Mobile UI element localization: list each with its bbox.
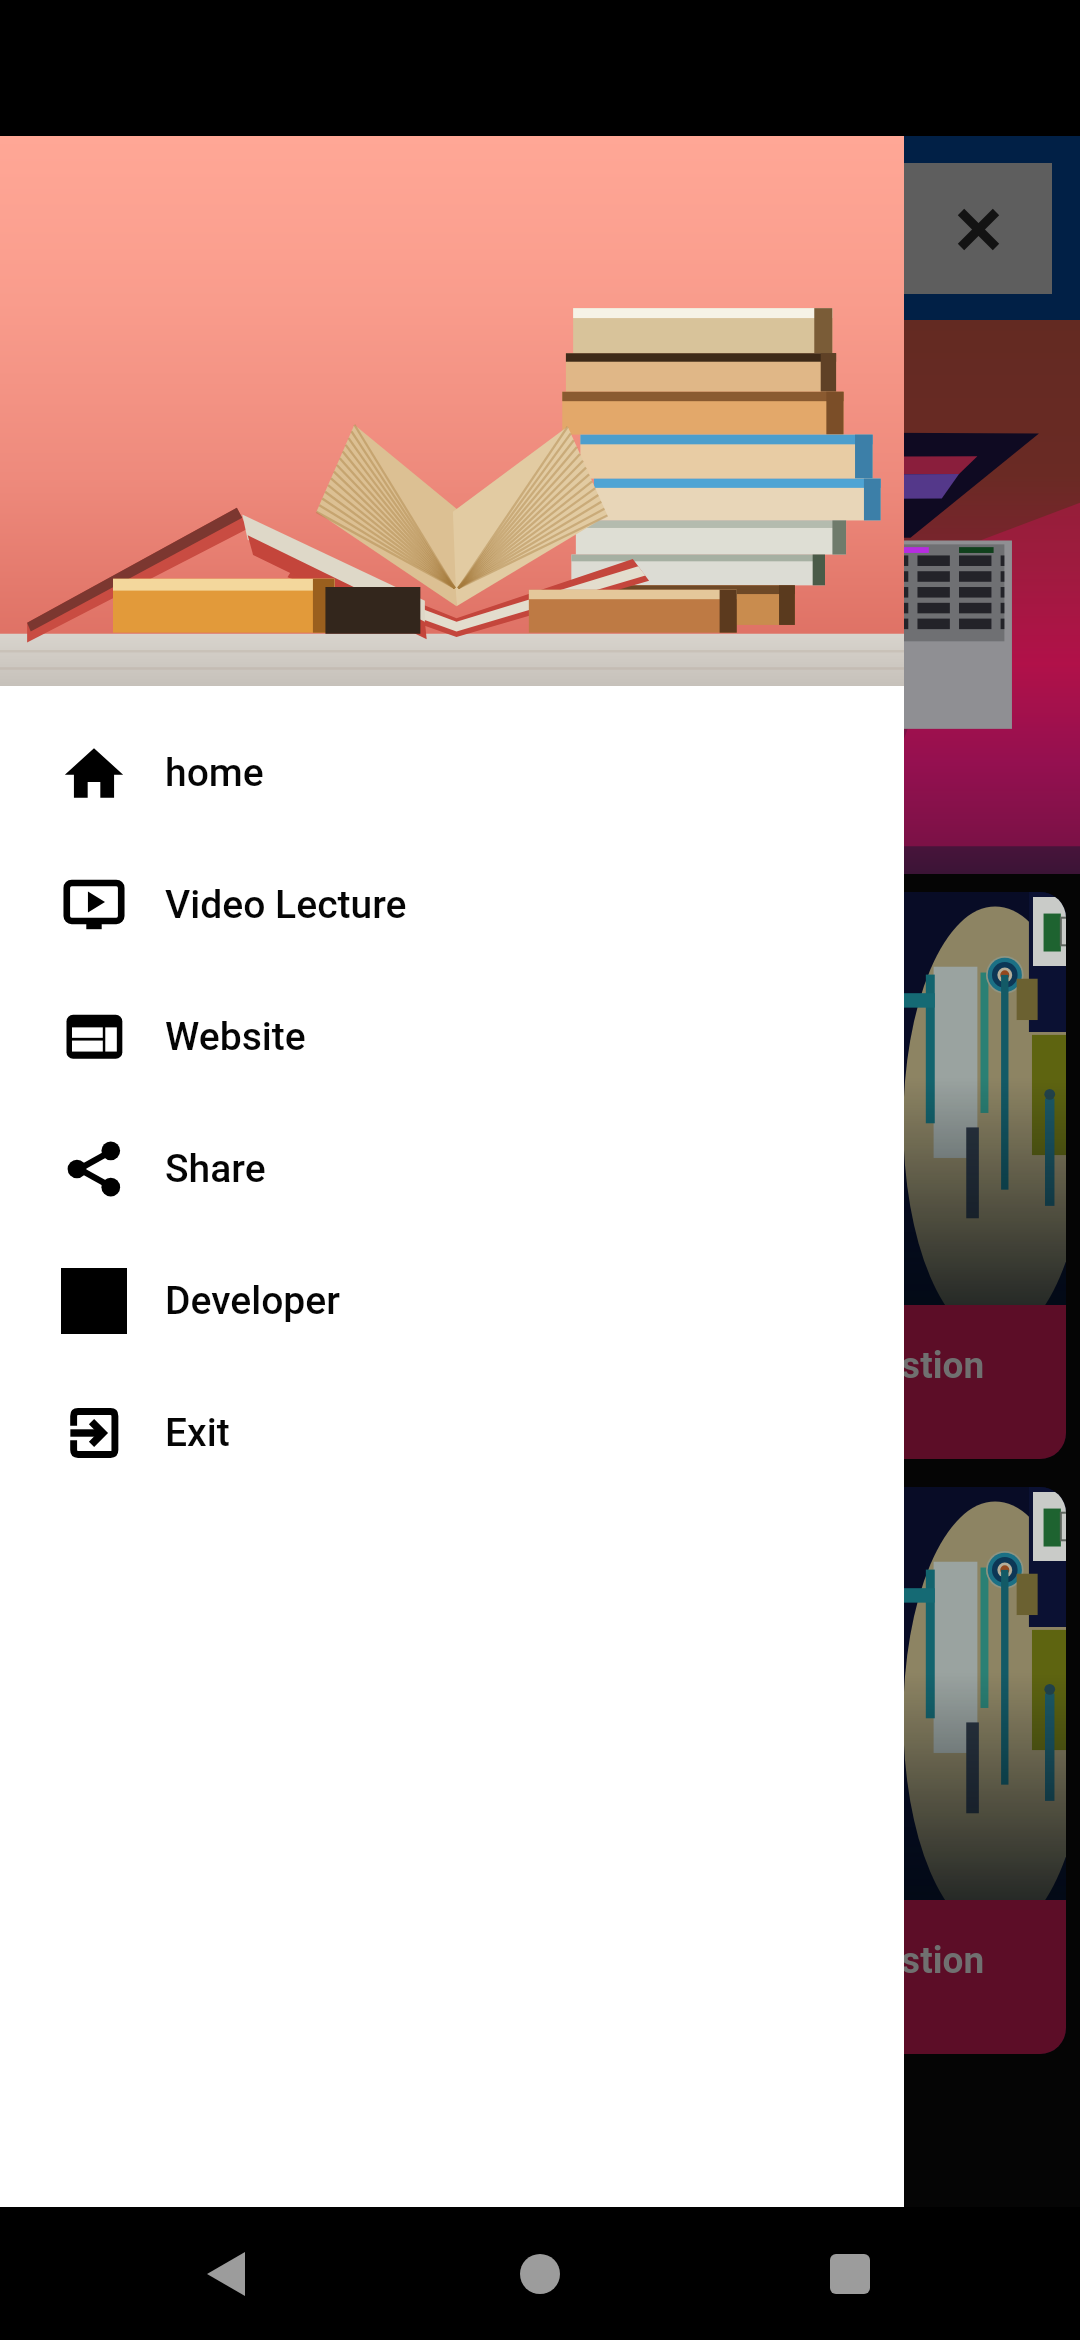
button[interactable]: Mcq Question	[16, 892, 1066, 1459]
staticText: Developer	[165, 1278, 340, 1324]
button[interactable]: home	[0, 707, 904, 839]
button[interactable]: Home	[492, 2226, 588, 2322]
button[interactable]: Developer	[0, 1235, 904, 1367]
staticText: Exit	[165, 1410, 230, 1456]
staticText: Mcq Question	[753, 1344, 985, 1387]
staticText: Website	[165, 1014, 306, 1060]
button[interactable]: Share	[0, 1103, 904, 1235]
button[interactable]: Recents	[802, 2226, 898, 2322]
staticText: Video Lecture	[165, 882, 407, 928]
button[interactable]: Video Lecture	[0, 839, 904, 971]
button[interactable]: Website	[0, 971, 904, 1103]
staticText: home	[165, 750, 264, 796]
button[interactable]: Mcq Question	[16, 1487, 1066, 2054]
button[interactable]: Close	[834, 163, 1052, 294]
staticText: Mcq Question	[753, 1939, 985, 1982]
staticText: Share	[165, 1146, 266, 1192]
button[interactable]: Exit	[0, 1367, 904, 1499]
button[interactable]: Back	[178, 2226, 274, 2322]
